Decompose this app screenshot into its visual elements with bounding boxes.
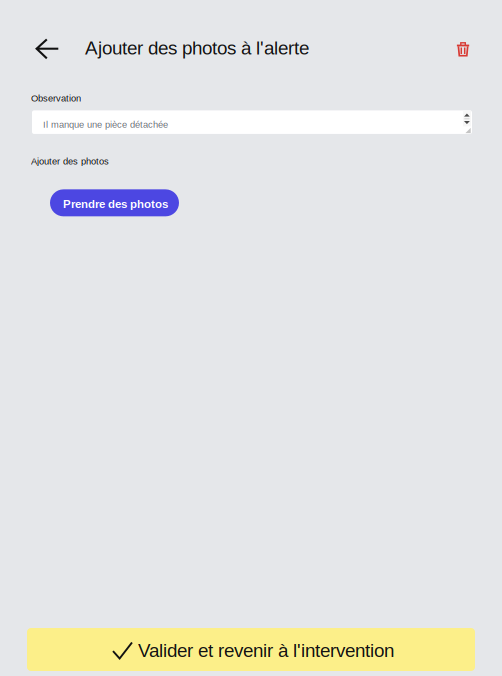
button[interactable]: Observation [32, 110, 472, 134]
staticText: Ajouter des photos à l'alerte [85, 37, 309, 58]
button[interactable]: Prendre des photos [50, 189, 179, 216]
staticText: Valider et revenir à l'intervention [138, 640, 394, 661]
staticText: Observation [31, 93, 81, 103]
staticText: Il manque une pièce détachée [43, 119, 168, 130]
button[interactable]: Back [27, 32, 67, 66]
button[interactable]: Delete alert [450, 36, 476, 62]
staticText: Prendre des photos [63, 198, 168, 210]
button[interactable]: Valider et revenir à l'intervention [27, 628, 475, 671]
staticText: Ajouter des photos [31, 156, 109, 166]
